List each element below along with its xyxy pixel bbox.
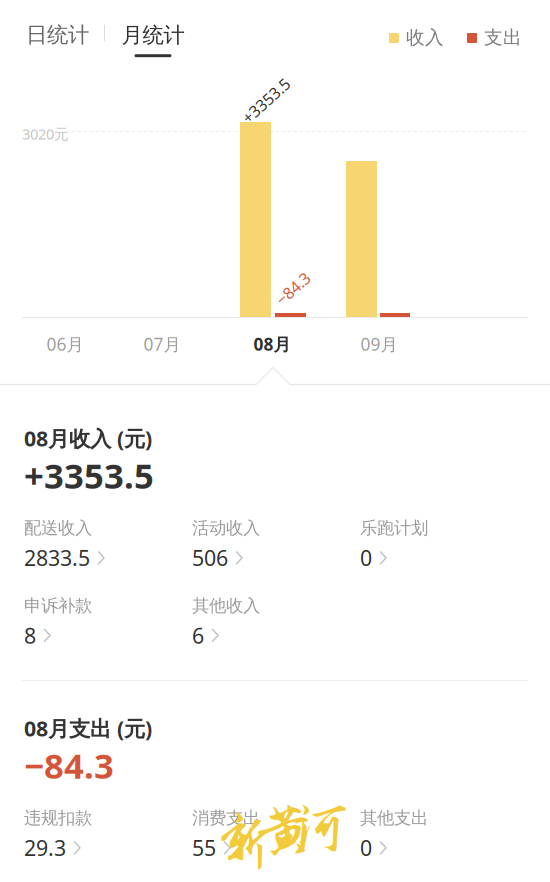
staticText: 申诉补款 <box>24 595 92 616</box>
button[interactable]: 其他收入 <box>192 595 360 650</box>
staticText: 29.3 <box>24 834 66 862</box>
button[interactable]: 日统计 <box>26 22 90 48</box>
staticText: 消费支出 <box>192 807 260 829</box>
staticText: 河 <box>293 796 353 863</box>
staticText: 3020元 <box>22 124 69 143</box>
button[interactable]: 07月 <box>126 333 198 355</box>
staticText: 月统计 <box>121 22 184 48</box>
staticText: −84.3 <box>273 278 313 299</box>
staticText: 黄 <box>253 798 313 865</box>
staticText: 配送收入 <box>24 517 92 539</box>
staticText: 2833.5 <box>24 544 90 572</box>
staticText: 08月收入 (元) <box>24 424 152 452</box>
staticText: 新 <box>217 810 275 874</box>
button[interactable]: 乐跑计划 <box>360 517 528 572</box>
staticText: 其他收入 <box>192 595 260 616</box>
button[interactable]: 月统计 <box>121 22 185 57</box>
staticText: 日统计 <box>26 22 89 48</box>
staticText: 收入 <box>406 26 444 49</box>
staticText: 07月 <box>143 332 180 355</box>
button[interactable]: 违规扣款 <box>24 807 192 862</box>
button[interactable]: 09月 <box>343 333 415 355</box>
staticText: 55 <box>192 834 216 862</box>
staticText: 6 <box>192 621 204 650</box>
staticText: 其他支出 <box>360 807 428 829</box>
staticText: −84.3 <box>24 742 114 788</box>
staticText: 06月 <box>46 332 83 355</box>
button[interactable]: 消费支出 <box>192 807 360 862</box>
staticText: +3353.5 <box>24 452 154 498</box>
staticText: 08月 <box>253 332 290 355</box>
staticText: 乐跑计划 <box>360 517 428 539</box>
staticText: 0 <box>360 834 372 862</box>
button[interactable]: 08月 <box>236 333 308 355</box>
staticText: 8 <box>24 621 36 650</box>
staticText: 违规扣款 <box>24 807 92 829</box>
staticText: +3353.5 <box>237 90 295 111</box>
button[interactable]: 申诉补款 <box>24 595 192 650</box>
button[interactable]: 配送收入 <box>24 517 192 572</box>
staticText: 506 <box>192 544 228 572</box>
staticText: 09月 <box>360 332 397 355</box>
button[interactable]: 其他支出 <box>360 807 528 862</box>
staticText: 08月支出 (元) <box>24 714 152 742</box>
button[interactable]: 活动收入 <box>192 517 360 572</box>
staticText: 0 <box>360 544 372 572</box>
button[interactable]: 06月 <box>29 333 101 355</box>
staticText: 支出 <box>484 26 522 49</box>
staticText: 活动收入 <box>192 517 260 539</box>
